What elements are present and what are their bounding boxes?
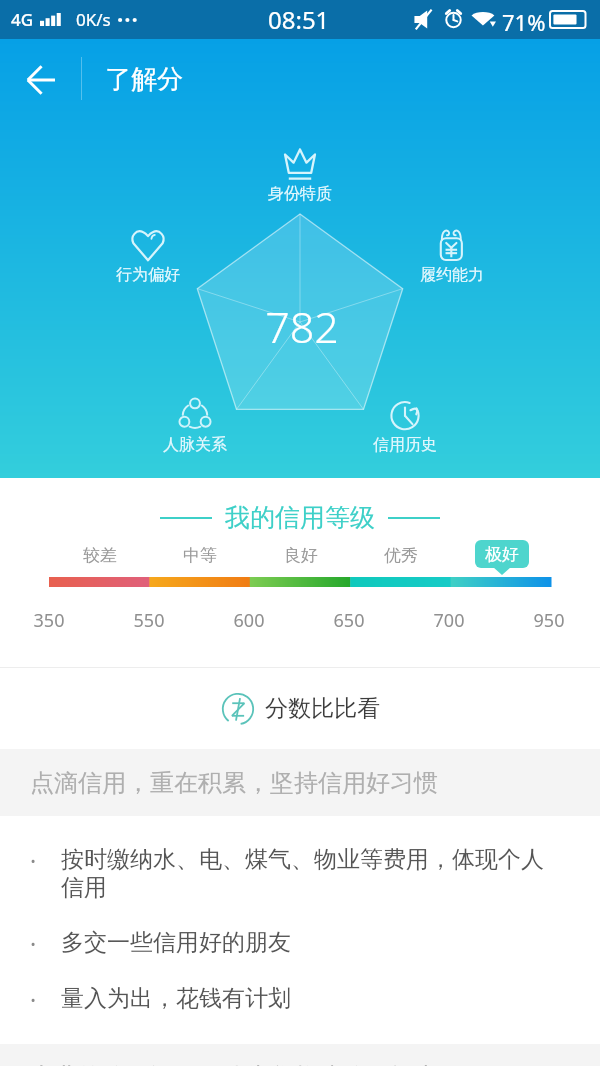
staticText: 行为偏好 [116,265,180,285]
staticText: · [30,984,61,1015]
staticText: 极好 [485,544,519,565]
button[interactable]: 分数比比看 [0,668,600,749]
staticText: 多交一些信用好的朋友 [61,928,291,957]
staticText: 了解分 [105,63,183,96]
staticText: 700 [409,608,489,633]
staticText: 信用历史 [373,435,437,455]
staticText: 350 [9,608,89,633]
button[interactable]: 信用历史 [365,398,445,455]
staticText: 优秀 [366,545,436,566]
staticText: 我的信用等级 [225,502,375,533]
staticText: 600 [209,608,289,633]
button[interactable]: 人脉关系 [155,398,235,455]
button[interactable]: Back [13,52,69,108]
staticText: 650 [309,608,389,633]
staticText: · [30,845,61,876]
staticText: 4G [11,8,34,31]
staticText: 按时缴纳水、电、煤气、物业等费用，体现个人信用 [61,845,560,902]
staticText: 专业的信用评估团队为您构建信用报告 [30,1062,438,1066]
staticText: 良好 [266,545,336,566]
staticText: 08:51 [268,3,330,36]
staticText: 0K/s [76,8,111,31]
staticText: 分数比比看 [265,694,380,723]
staticText: 量入为出，花钱有计划 [61,984,291,1013]
button[interactable]: 行为偏好 [108,228,188,285]
staticText: 点滴信用，重在积累，坚持信用好习惯 [30,768,438,798]
staticText: 履约能力 [420,265,484,285]
staticText: 身份特质 [268,184,332,204]
staticText: 71% [502,7,546,37]
staticText: 782 [2,297,600,356]
staticText: 中等 [165,545,235,566]
button[interactable]: 履约能力 [412,228,492,285]
staticText: 550 [109,608,189,633]
staticText: 950 [509,608,589,633]
button[interactable]: 身份特质 [260,147,340,204]
button[interactable]: 极好 [475,540,529,568]
staticText: · [30,928,61,959]
staticText: 人脉关系 [163,435,227,455]
staticText: 较差 [65,545,135,566]
